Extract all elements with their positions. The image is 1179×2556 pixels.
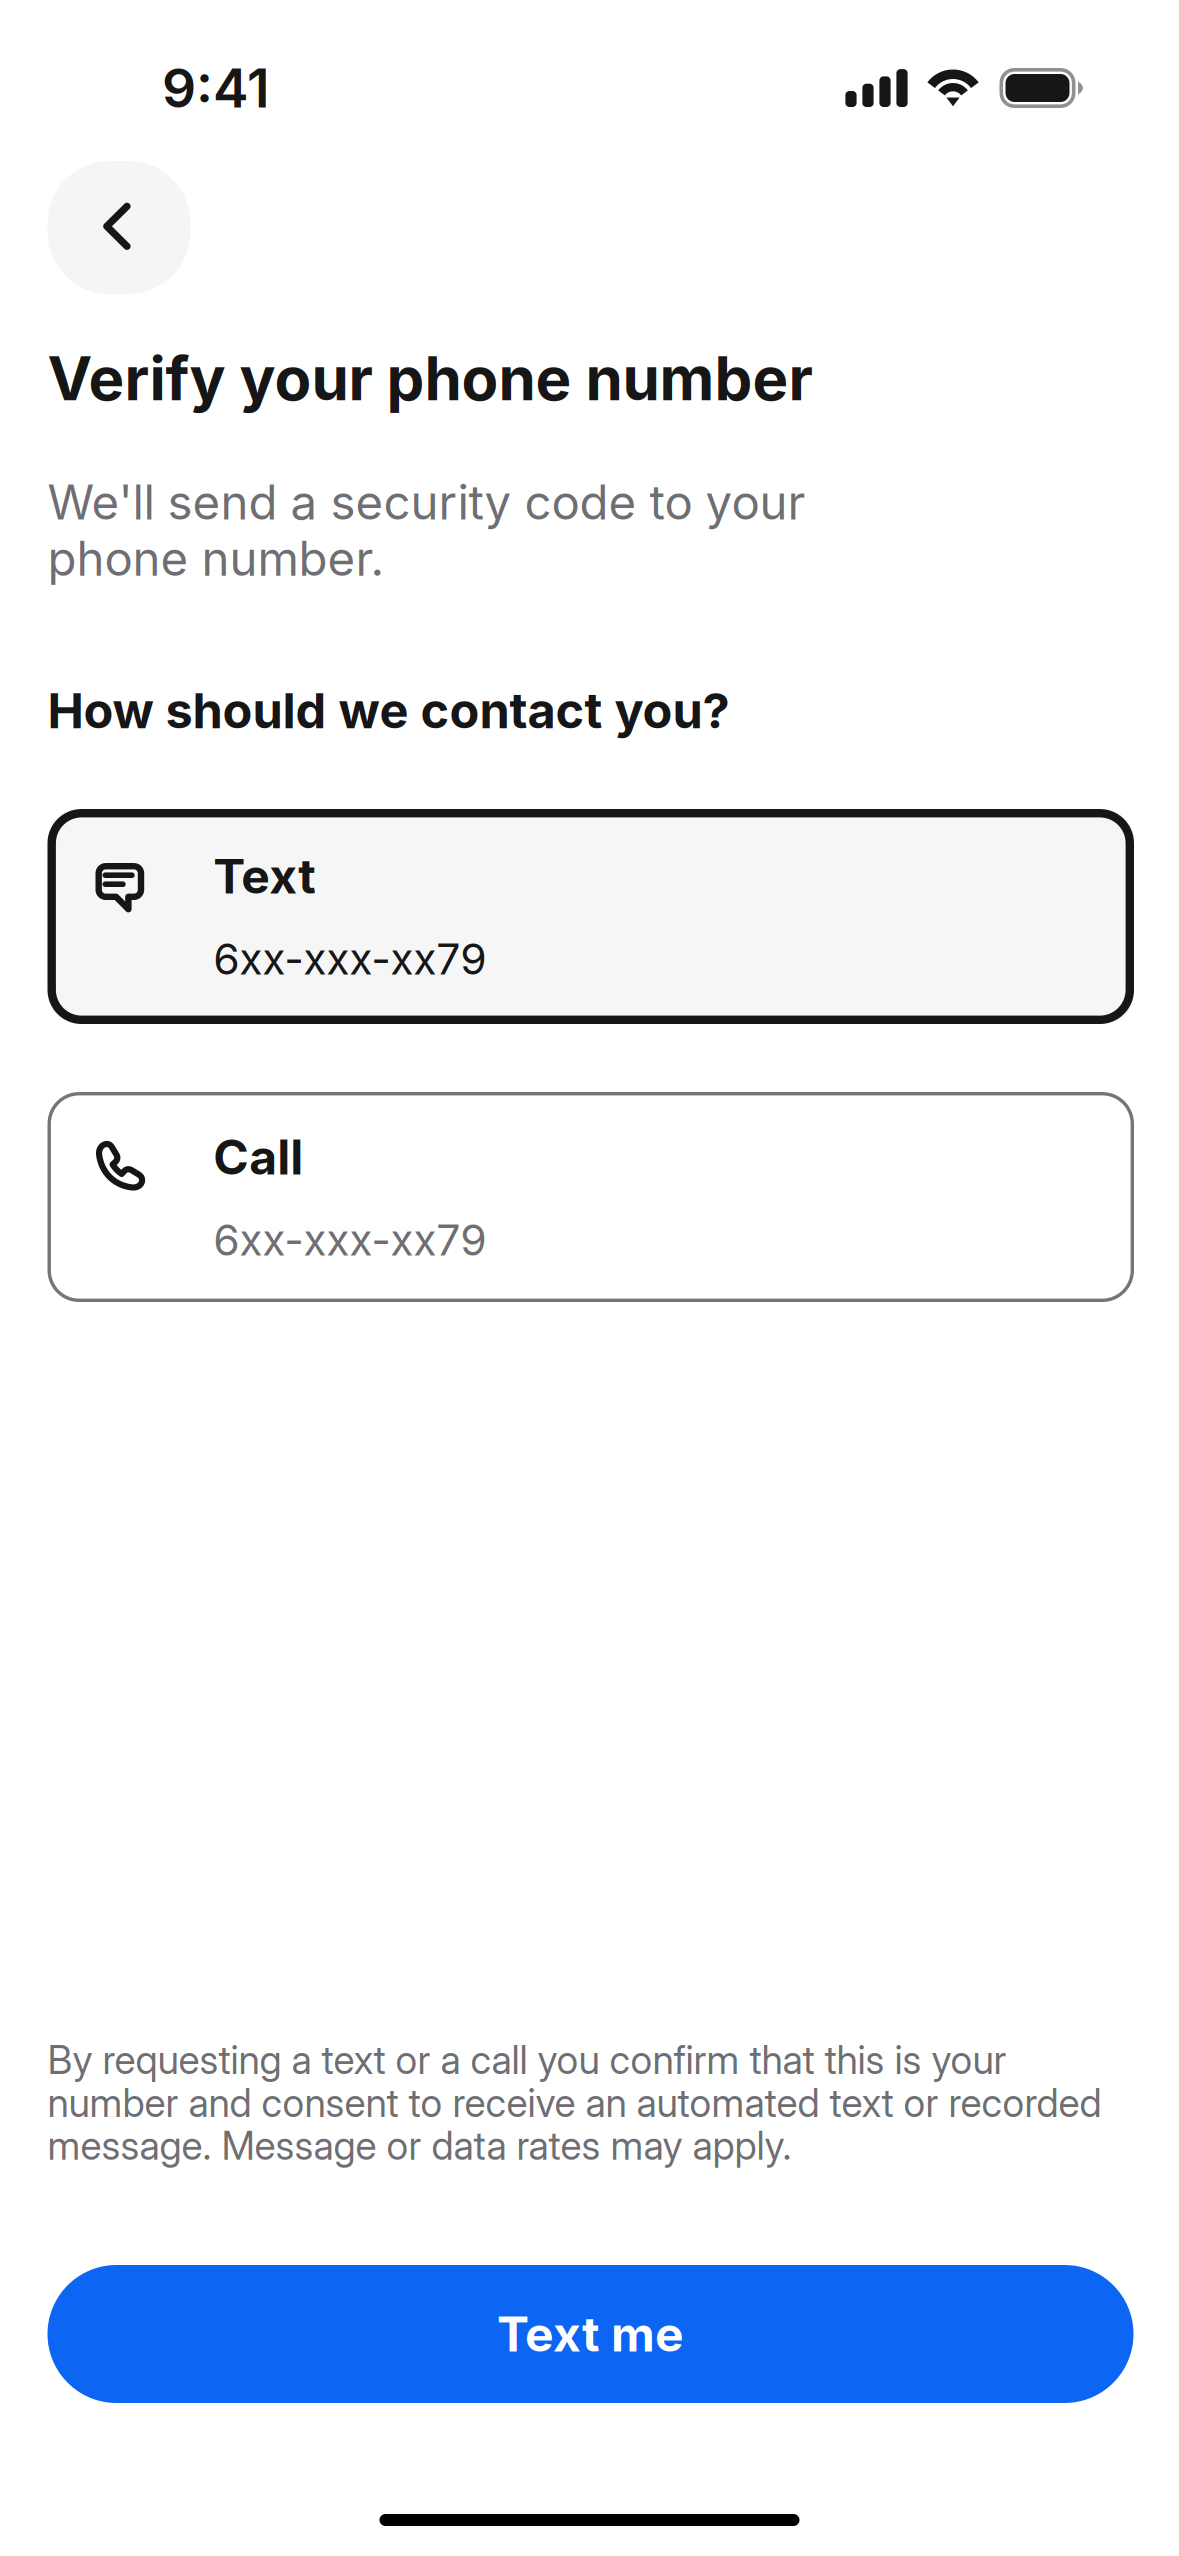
staticText: Text me <box>497 2305 684 2363</box>
staticText: By requesting a text or a call you confi… <box>47 2037 1101 2169</box>
staticText: How should we contact you? <box>47 681 729 740</box>
button[interactable]: Text me <box>47 2265 1133 2403</box>
staticText: 6xx-xxx-xx79 <box>213 933 486 985</box>
button[interactable]: Back <box>47 161 190 294</box>
button[interactable]: Text <box>47 809 1134 1024</box>
staticText: We'll send a security code to your phone… <box>47 474 805 587</box>
staticText: 6xx-xxx-xx79 <box>213 1214 486 1266</box>
staticText: 9:41 <box>162 56 270 120</box>
staticText: Text <box>213 847 316 905</box>
staticText: Verify your phone number <box>47 342 812 415</box>
staticText: Call <box>213 1128 303 1186</box>
button[interactable]: Call <box>47 1092 1134 1302</box>
